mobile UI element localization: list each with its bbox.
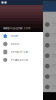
staticText: example@gmail.com	[3, 27, 30, 30]
staticText: Privacy policy	[11, 58, 28, 62]
button[interactable]: Terms of use	[0, 48, 43, 56]
staticText: Home	[11, 34, 19, 38]
button[interactable]: Privacy policy	[0, 56, 43, 64]
button[interactable]: About	[0, 40, 43, 48]
staticText: Terms of use	[11, 50, 29, 54]
staticText: About	[11, 42, 20, 46]
button[interactable]: Home	[0, 32, 43, 40]
